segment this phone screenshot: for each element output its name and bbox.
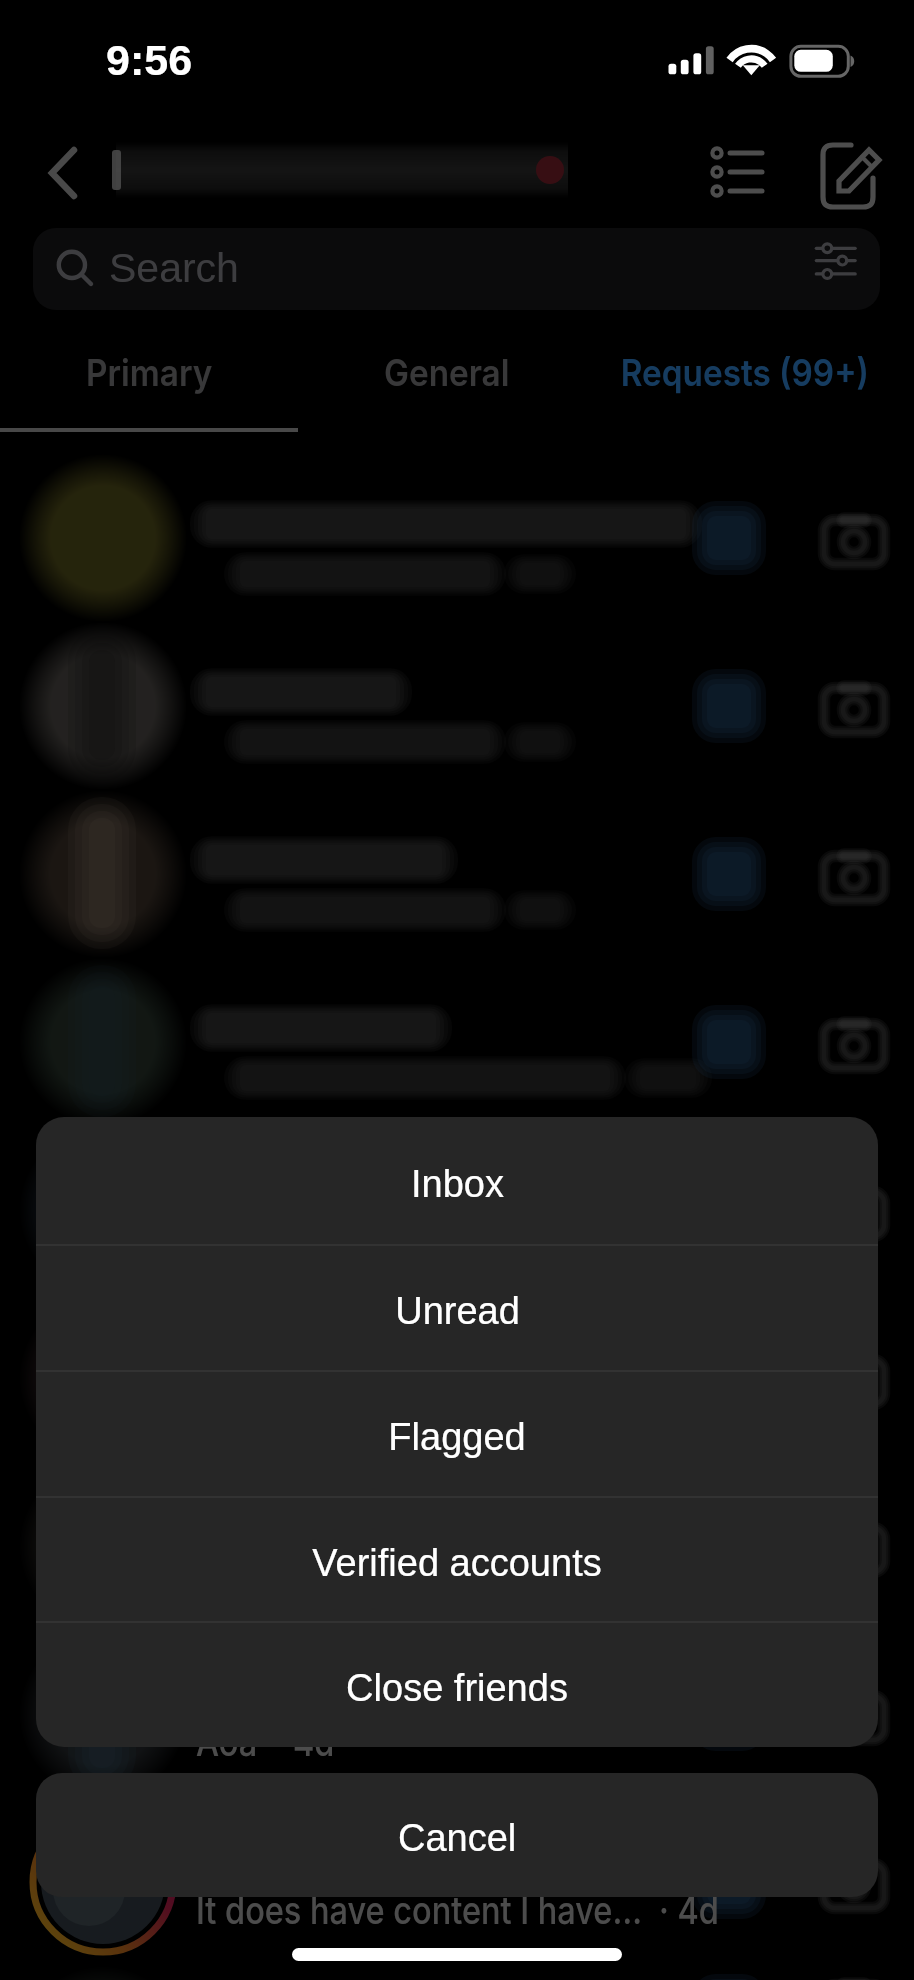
staticText: Inbox xyxy=(411,1163,504,1205)
button[interactable]: Inbox xyxy=(36,1117,878,1244)
staticText: General xyxy=(384,350,510,395)
staticText: Verified accounts xyxy=(312,1542,602,1584)
staticText: Search xyxy=(109,245,239,291)
button[interactable] xyxy=(0,958,914,1126)
button[interactable]: Verified accounts xyxy=(36,1498,878,1621)
button[interactable] xyxy=(0,1462,914,1630)
button[interactable]: Flagged xyxy=(36,1372,878,1496)
button[interactable] xyxy=(0,1798,914,1966)
button[interactable]: Close friends xyxy=(36,1623,878,1747)
button[interactable]: Primary xyxy=(0,313,298,431)
staticText: Primary xyxy=(86,350,213,395)
staticText: Requests (99+) xyxy=(621,350,869,395)
button[interactable]: Back xyxy=(30,138,100,208)
staticText: It does have content I have… · 4d xyxy=(196,1887,719,1933)
button[interactable] xyxy=(0,1294,914,1462)
staticText: Flagged xyxy=(388,1416,526,1458)
button[interactable]: Cancel xyxy=(36,1773,878,1897)
button[interactable] xyxy=(0,622,914,790)
button[interactable] xyxy=(0,1126,914,1294)
staticText: Close friends xyxy=(346,1667,568,1709)
button[interactable] xyxy=(0,1630,914,1798)
button[interactable]: Unread xyxy=(36,1246,878,1370)
button[interactable]: General xyxy=(298,313,596,431)
staticText: Unread xyxy=(395,1290,520,1332)
staticText: Aoa · 4d xyxy=(196,1719,334,1765)
staticText: 9:56 xyxy=(106,36,193,84)
button[interactable]: Search xyxy=(33,228,880,310)
staticText: Cancel xyxy=(398,1817,517,1859)
button[interactable]: New message xyxy=(806,138,890,222)
button[interactable]: Requests (99+) xyxy=(596,313,894,431)
button[interactable]: Message requests xyxy=(694,138,778,222)
button[interactable] xyxy=(0,790,914,958)
button[interactable] xyxy=(0,454,914,622)
